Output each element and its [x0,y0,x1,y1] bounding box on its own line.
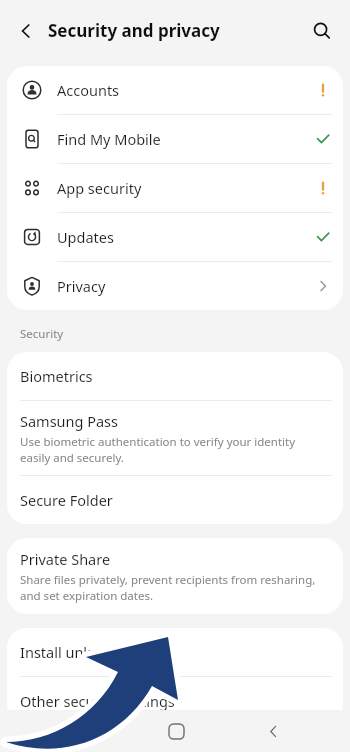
button[interactable]: Back [256,714,290,748]
staticText: Install unknown apps [20,642,166,662]
staticText: Find My Mobile [57,129,303,149]
button[interactable]: Secure Folder [7,476,343,524]
staticText: Samsung Pass [20,411,119,431]
button[interactable]: Install unknown apps [7,628,343,676]
button[interactable]: Updates [7,213,343,261]
button[interactable]: Samsung Pass [7,401,343,475]
button[interactable]: Recents [60,714,94,748]
staticText: Accounts [57,80,303,100]
staticText: Use biometric authentication to verify y… [20,434,327,465]
staticText: Secure Folder [20,490,113,510]
staticText: Security and privacy [48,19,220,42]
button[interactable]: App security [7,164,343,212]
button[interactable]: Private Share [7,538,343,614]
button[interactable]: Other security settings [7,677,343,725]
button[interactable]: Biometrics [7,352,343,400]
staticText: Privacy [57,276,303,296]
staticText: Share files privately, prevent recipient… [20,572,327,603]
staticText: Security [20,326,64,342]
staticText: Private Share [20,549,111,569]
button[interactable]: Privacy [7,262,343,310]
button[interactable]: Accounts [7,66,343,114]
button[interactable]: Back [8,13,44,49]
button[interactable]: Home [159,714,193,748]
button[interactable]: Find My Mobile [7,115,343,163]
staticText: Updates [57,227,303,247]
staticText: App security [57,178,303,198]
button[interactable]: Search [304,13,340,49]
staticText: Other security settings [20,691,175,711]
staticText: Biometrics [20,366,93,386]
